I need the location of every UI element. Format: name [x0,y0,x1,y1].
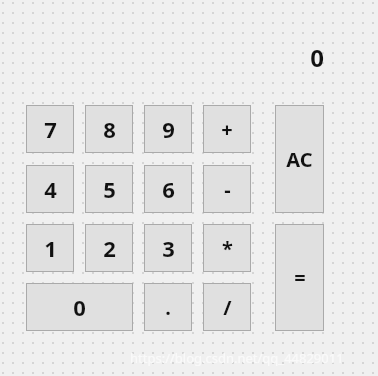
staticText: 1 [44,233,57,263]
staticText: - [224,176,231,203]
button[interactable]: 6 [144,165,192,213]
staticText: 6 [162,174,175,204]
button[interactable]: 3 [144,224,192,272]
staticText: 5 [103,174,116,204]
staticText: * [222,235,233,262]
staticText: . [165,294,171,321]
button[interactable]: 8 [85,105,133,153]
staticText: 3 [162,233,175,263]
button[interactable]: AC [275,105,324,213]
button[interactable]: + [203,105,251,153]
button[interactable]: 1 [26,224,74,272]
staticText: / [223,294,232,321]
button[interactable]: 9 [144,105,192,153]
button[interactable]: . [144,283,192,331]
staticText: 9 [162,114,175,144]
button[interactable]: 0 [26,283,133,331]
button[interactable]: 7 [26,105,74,153]
button[interactable]: 4 [26,165,74,213]
button[interactable]: - [203,165,251,213]
staticText: 0 [310,41,324,73]
button[interactable]: 5 [85,165,133,213]
staticText: 4 [44,174,57,204]
staticText: 7 [44,114,57,144]
staticText: AC [286,146,313,173]
button[interactable]: = [275,224,324,331]
button[interactable]: / [203,283,251,331]
staticText: + [221,116,233,143]
staticText: 2 [103,233,116,263]
staticText: https://blog.csdn.net/qq_44829011 [130,349,344,367]
staticText: 8 [103,114,116,144]
staticText: 0 [73,292,86,322]
button[interactable]: * [203,224,251,272]
staticText: = [294,264,306,291]
button[interactable]: 2 [85,224,133,272]
